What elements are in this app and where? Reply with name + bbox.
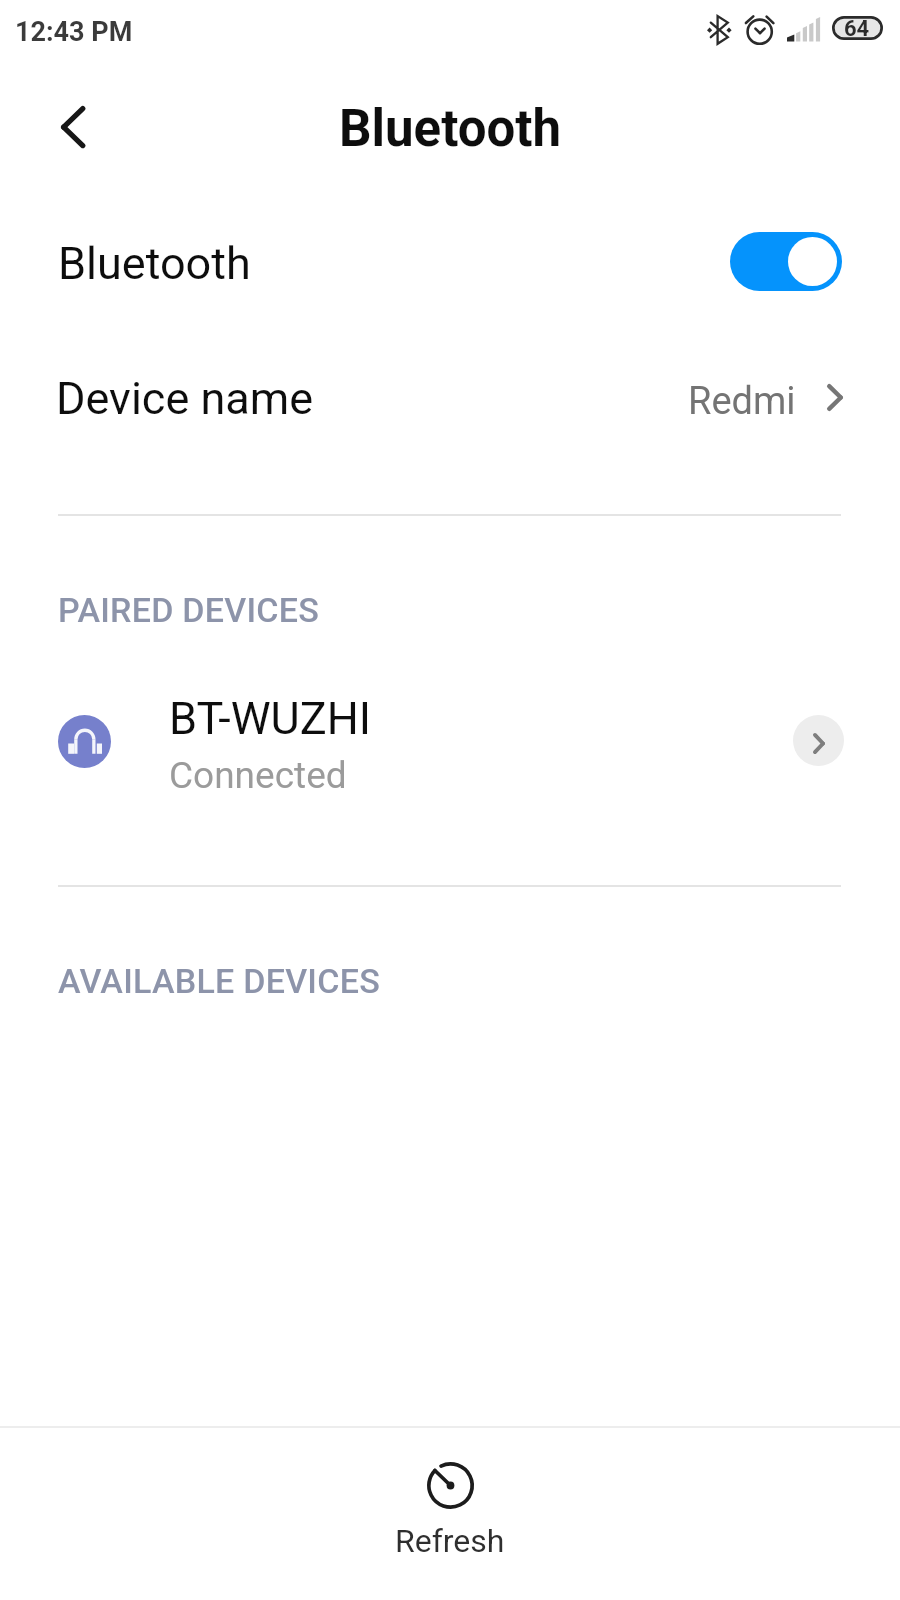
staticText: Device name: [56, 372, 314, 425]
button[interactable]: Bluetooth: [0, 192, 900, 330]
staticText: PAIRED DEVICES: [58, 590, 320, 630]
button[interactable]: Back: [38, 92, 108, 162]
staticText: Bluetooth: [339, 99, 562, 159]
staticText: AVAILABLE DEVICES: [58, 961, 380, 1001]
staticText: BT-WUZHI: [169, 692, 372, 745]
button[interactable]: Device settings: [793, 715, 844, 766]
staticText: 64: [844, 16, 870, 40]
staticText: Bluetooth: [58, 237, 251, 290]
staticText: 12:43 PM: [15, 16, 133, 48]
button[interactable]: Turn Bluetooth off: [730, 232, 842, 291]
staticText: Redmi: [688, 379, 796, 424]
staticText: Connected: [169, 754, 347, 797]
button[interactable]: Device name: [0, 330, 900, 466]
button[interactable]: BT-WUZHI: [0, 662, 900, 822]
staticText: Refresh: [395, 1522, 505, 1560]
button[interactable]: Refresh: [335, 1428, 565, 1580]
